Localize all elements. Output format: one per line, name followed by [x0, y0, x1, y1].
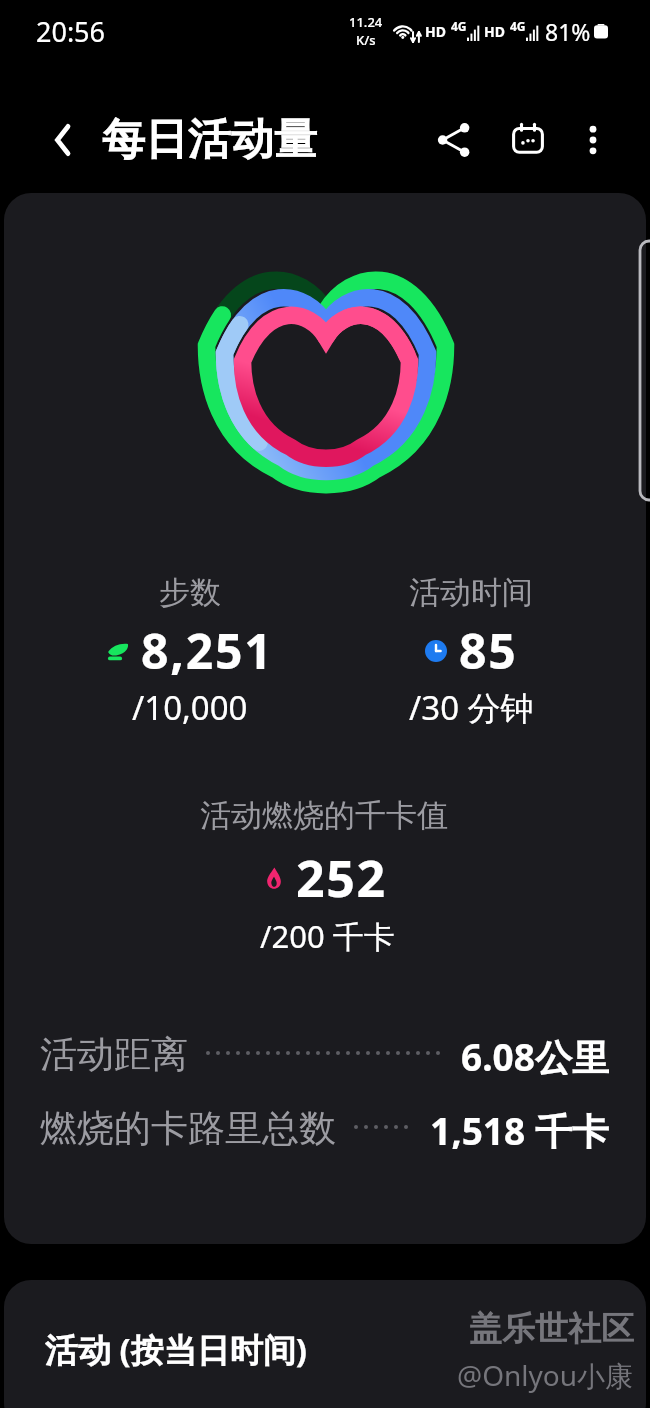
staticText: 81%	[545, 16, 591, 47]
button[interactable]: Calendar	[496, 108, 560, 172]
staticText: 活动距离	[40, 1031, 188, 1075]
staticText: 1,518 千卡	[430, 1105, 609, 1149]
staticText: @Onlyou小康	[457, 1356, 634, 1394]
button[interactable]: Back	[32, 108, 96, 172]
staticText: 11.24	[349, 13, 383, 31]
button[interactable]: 活动 (按当日时间)	[4, 1280, 646, 1408]
staticText: 8,251	[141, 618, 274, 683]
button[interactable]: 活动距离	[40, 1031, 609, 1075]
button[interactable]: More options	[565, 112, 621, 168]
staticText: 活动 (按当日时间)	[45, 1327, 307, 1372]
staticText: /10,000	[132, 685, 248, 730]
staticText: 步数	[159, 573, 221, 612]
staticText: HD	[425, 22, 446, 41]
button[interactable]: 燃烧的卡路里总数	[40, 1105, 609, 1149]
staticText: 盖乐世社区	[469, 1308, 634, 1350]
button[interactable]: Share	[422, 108, 486, 172]
staticText: /200 千卡	[260, 915, 395, 957]
staticText: 4G	[451, 18, 467, 34]
staticText: 6.08公里	[461, 1031, 609, 1075]
staticText: HD	[484, 22, 505, 41]
staticText: 20:56	[36, 13, 106, 50]
staticText: 85	[459, 618, 518, 683]
staticText: /30 分钟	[409, 685, 534, 730]
staticText: 活动时间	[409, 573, 533, 612]
staticText: 252	[296, 844, 387, 912]
staticText: 4G	[510, 18, 526, 34]
staticText: 每日活动量	[102, 113, 317, 167]
staticText: 活动燃烧的千卡值	[200, 796, 448, 835]
staticText: 燃烧的卡路里总数	[40, 1105, 336, 1149]
staticText: K/s	[356, 31, 376, 49]
